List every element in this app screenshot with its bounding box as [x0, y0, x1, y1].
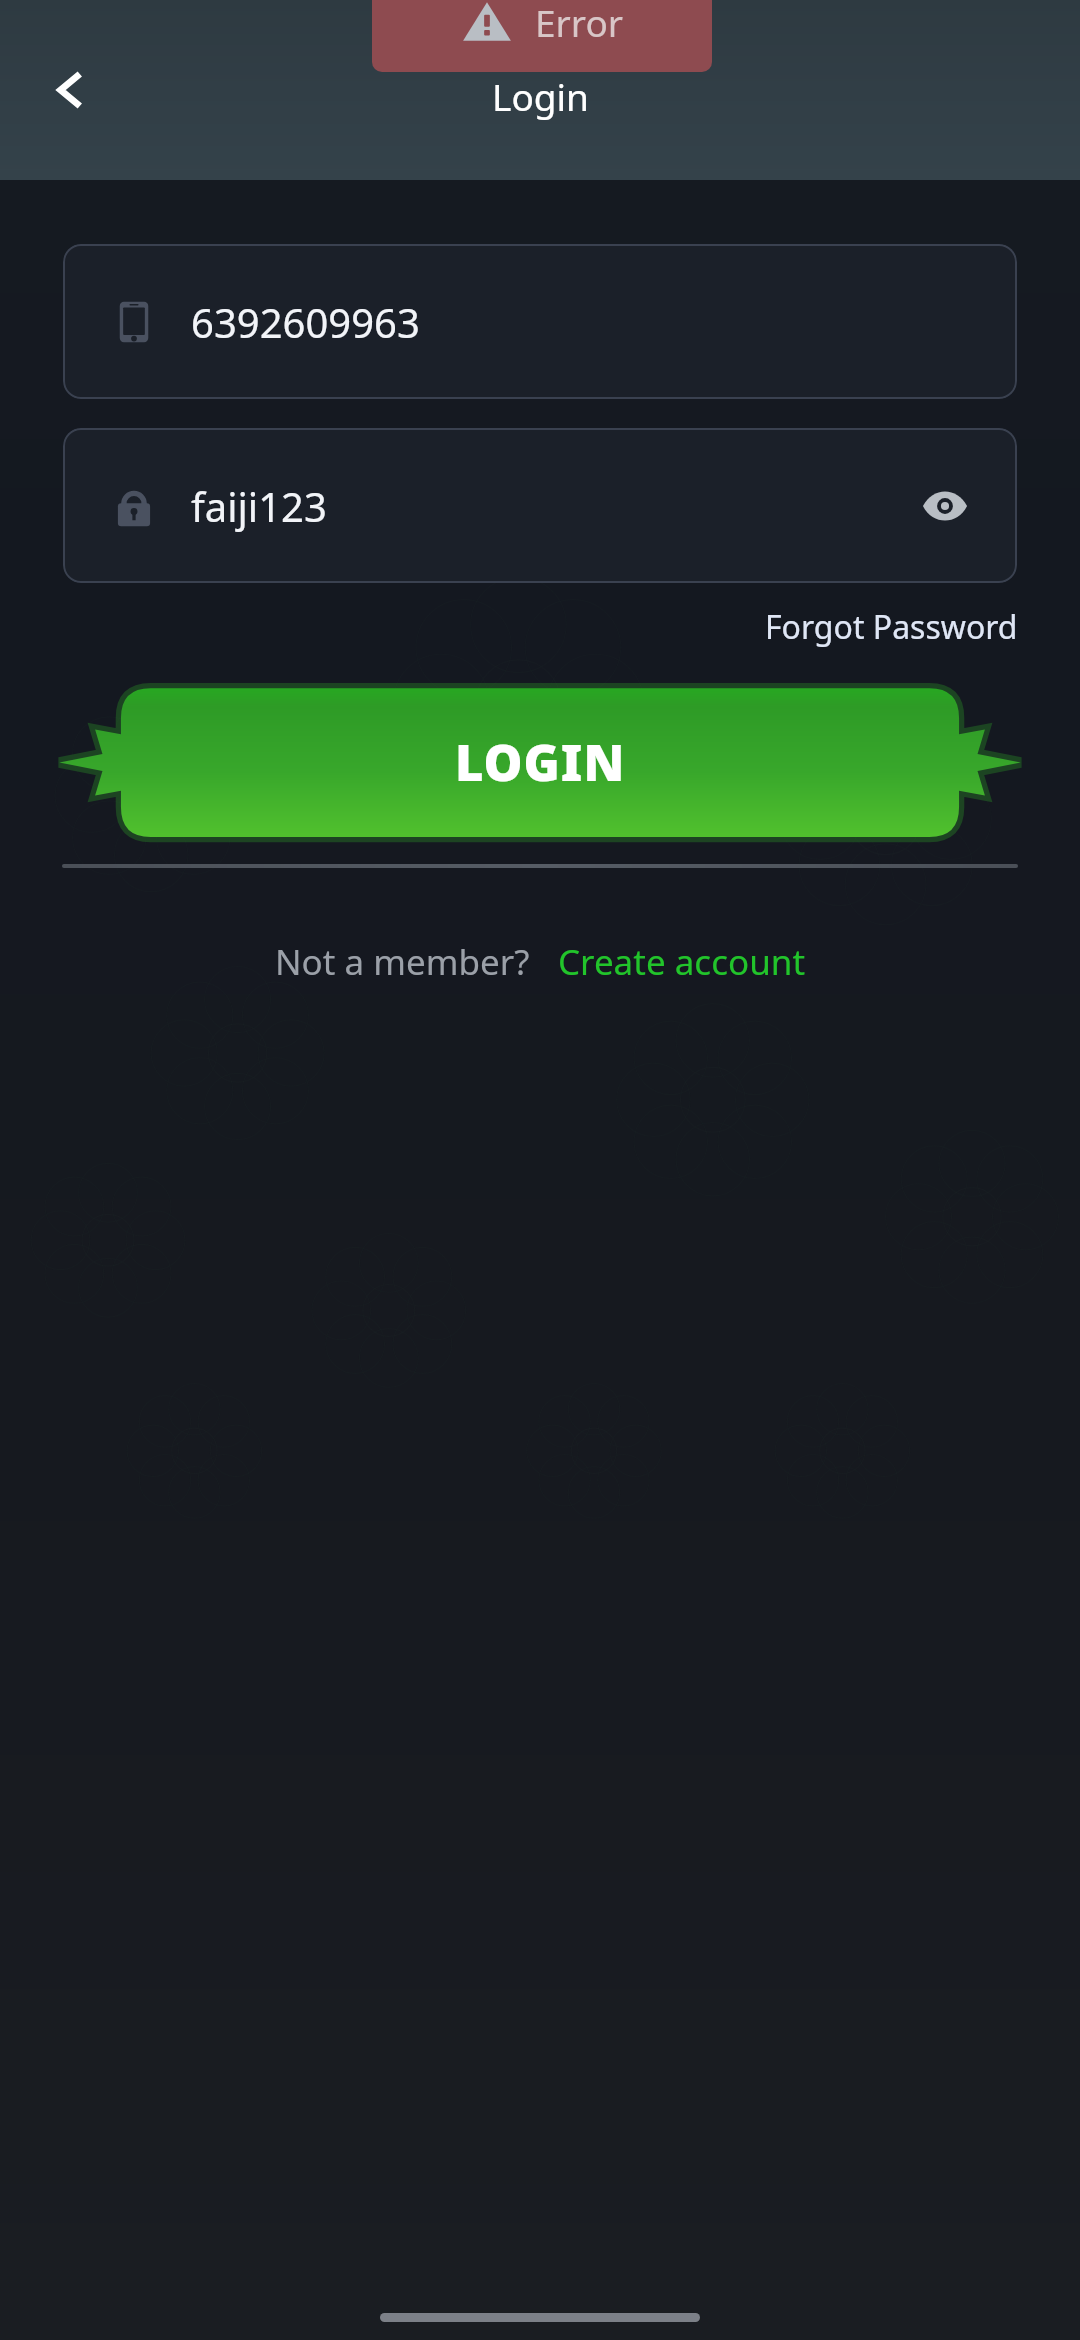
staticText: Forgot Password [765, 605, 1018, 649]
staticText: faiji123 [191, 479, 327, 533]
staticText: LOGIN [455, 729, 626, 796]
button[interactable]: faiji123 [63, 428, 1017, 583]
button[interactable]: Back [28, 47, 114, 133]
button[interactable]: LOGIN [0, 675, 1080, 850]
button[interactable]: Show password [915, 476, 975, 536]
button[interactable]: Create account [558, 938, 806, 986]
staticText: Create account [558, 938, 806, 986]
staticText: Not a member? [275, 938, 530, 986]
staticText: Error [535, 0, 624, 47]
button[interactable]: Forgot Password [765, 605, 1018, 649]
staticText: Login [492, 71, 589, 121]
button[interactable]: 6392609963 [63, 244, 1017, 399]
staticText: 6392609963 [191, 295, 420, 349]
